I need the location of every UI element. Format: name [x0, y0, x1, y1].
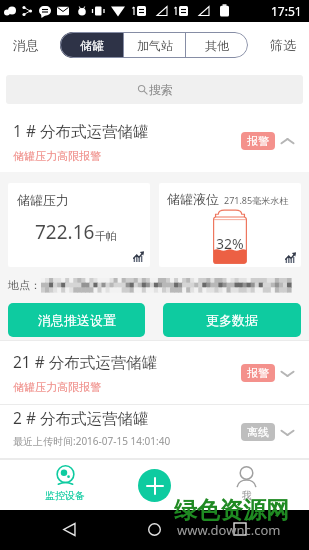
- button[interactable]: 离线: [241, 423, 275, 441]
- staticText: 筛选: [270, 37, 296, 53]
- staticText: 储罐压力: [17, 192, 69, 208]
- button[interactable]: Recents: [225, 514, 255, 544]
- staticText: 最近上传时间:2016-07-15 14:01:40: [13, 434, 171, 448]
- staticText: 报警: [247, 134, 269, 148]
- staticText: 千帕: [95, 229, 117, 243]
- button[interactable]: 21 # 分布式运营储罐: [0, 341, 309, 404]
- staticText: 地点：: [8, 278, 41, 292]
- other: Collapse: [280, 134, 295, 149]
- staticText: 其他: [205, 38, 229, 53]
- button[interactable]: 储罐: [60, 32, 123, 58]
- button[interactable]: 储罐液位: [159, 183, 301, 267]
- button[interactable]: 加气站: [124, 32, 185, 58]
- staticText: 17:51: [271, 3, 302, 19]
- staticText: 搜索: [149, 82, 173, 97]
- button[interactable]: Back: [54, 514, 84, 544]
- other: Expand: [280, 425, 295, 440]
- staticText: 722.16: [35, 219, 95, 245]
- button[interactable]: 消息推送设置: [8, 303, 145, 337]
- staticText: 21 # 分布式运营储罐: [13, 351, 158, 372]
- staticText: 监控设备: [45, 489, 85, 502]
- staticText: 更多数据: [206, 312, 258, 328]
- staticText: 我: [242, 489, 252, 502]
- staticText: www.downc.com: [177, 521, 281, 539]
- button[interactable]: 我: [206, 459, 286, 510]
- staticText: 2 # 分布式运营储罐: [13, 407, 149, 428]
- button[interactable]: 储罐压力: [8, 183, 150, 267]
- other: Expand: [280, 366, 295, 381]
- staticText: 32%: [216, 234, 244, 253]
- staticText: 报警: [247, 366, 269, 380]
- button[interactable]: 1 # 分布式运营储罐: [0, 110, 309, 172]
- button[interactable]: 报警: [241, 132, 275, 150]
- button[interactable]: 2 # 分布式运营储罐: [0, 405, 309, 458]
- staticText: 271.85毫米水柱: [224, 194, 289, 206]
- staticText: 绿色资源网: [174, 496, 289, 525]
- staticText: 储罐: [80, 38, 104, 53]
- button[interactable]: 更多数据: [163, 303, 301, 337]
- button[interactable]: 其他: [186, 32, 248, 58]
- other: Chart: [285, 252, 296, 263]
- button[interactable]: 消息: [0, 29, 47, 61]
- button[interactable]: Add: [138, 469, 171, 502]
- staticText: 1 # 分布式运营储罐: [13, 120, 149, 141]
- button[interactable]: 搜索: [6, 75, 303, 104]
- staticText: 加气站: [137, 38, 173, 53]
- staticText: 消息推送设置: [38, 312, 116, 328]
- button[interactable]: 报警: [241, 364, 275, 382]
- staticText: 离线: [247, 425, 269, 439]
- staticText: 储罐压力高限报警: [13, 380, 101, 394]
- staticText: 储罐压力高限报警: [13, 149, 101, 163]
- staticText: 消息: [13, 37, 39, 53]
- button[interactable]: 筛选: [262, 29, 309, 61]
- staticText: 储罐液位: [167, 191, 219, 207]
- button[interactable]: Home: [139, 514, 169, 544]
- button[interactable]: 监控设备: [25, 459, 105, 510]
- other: Chart: [133, 251, 144, 262]
